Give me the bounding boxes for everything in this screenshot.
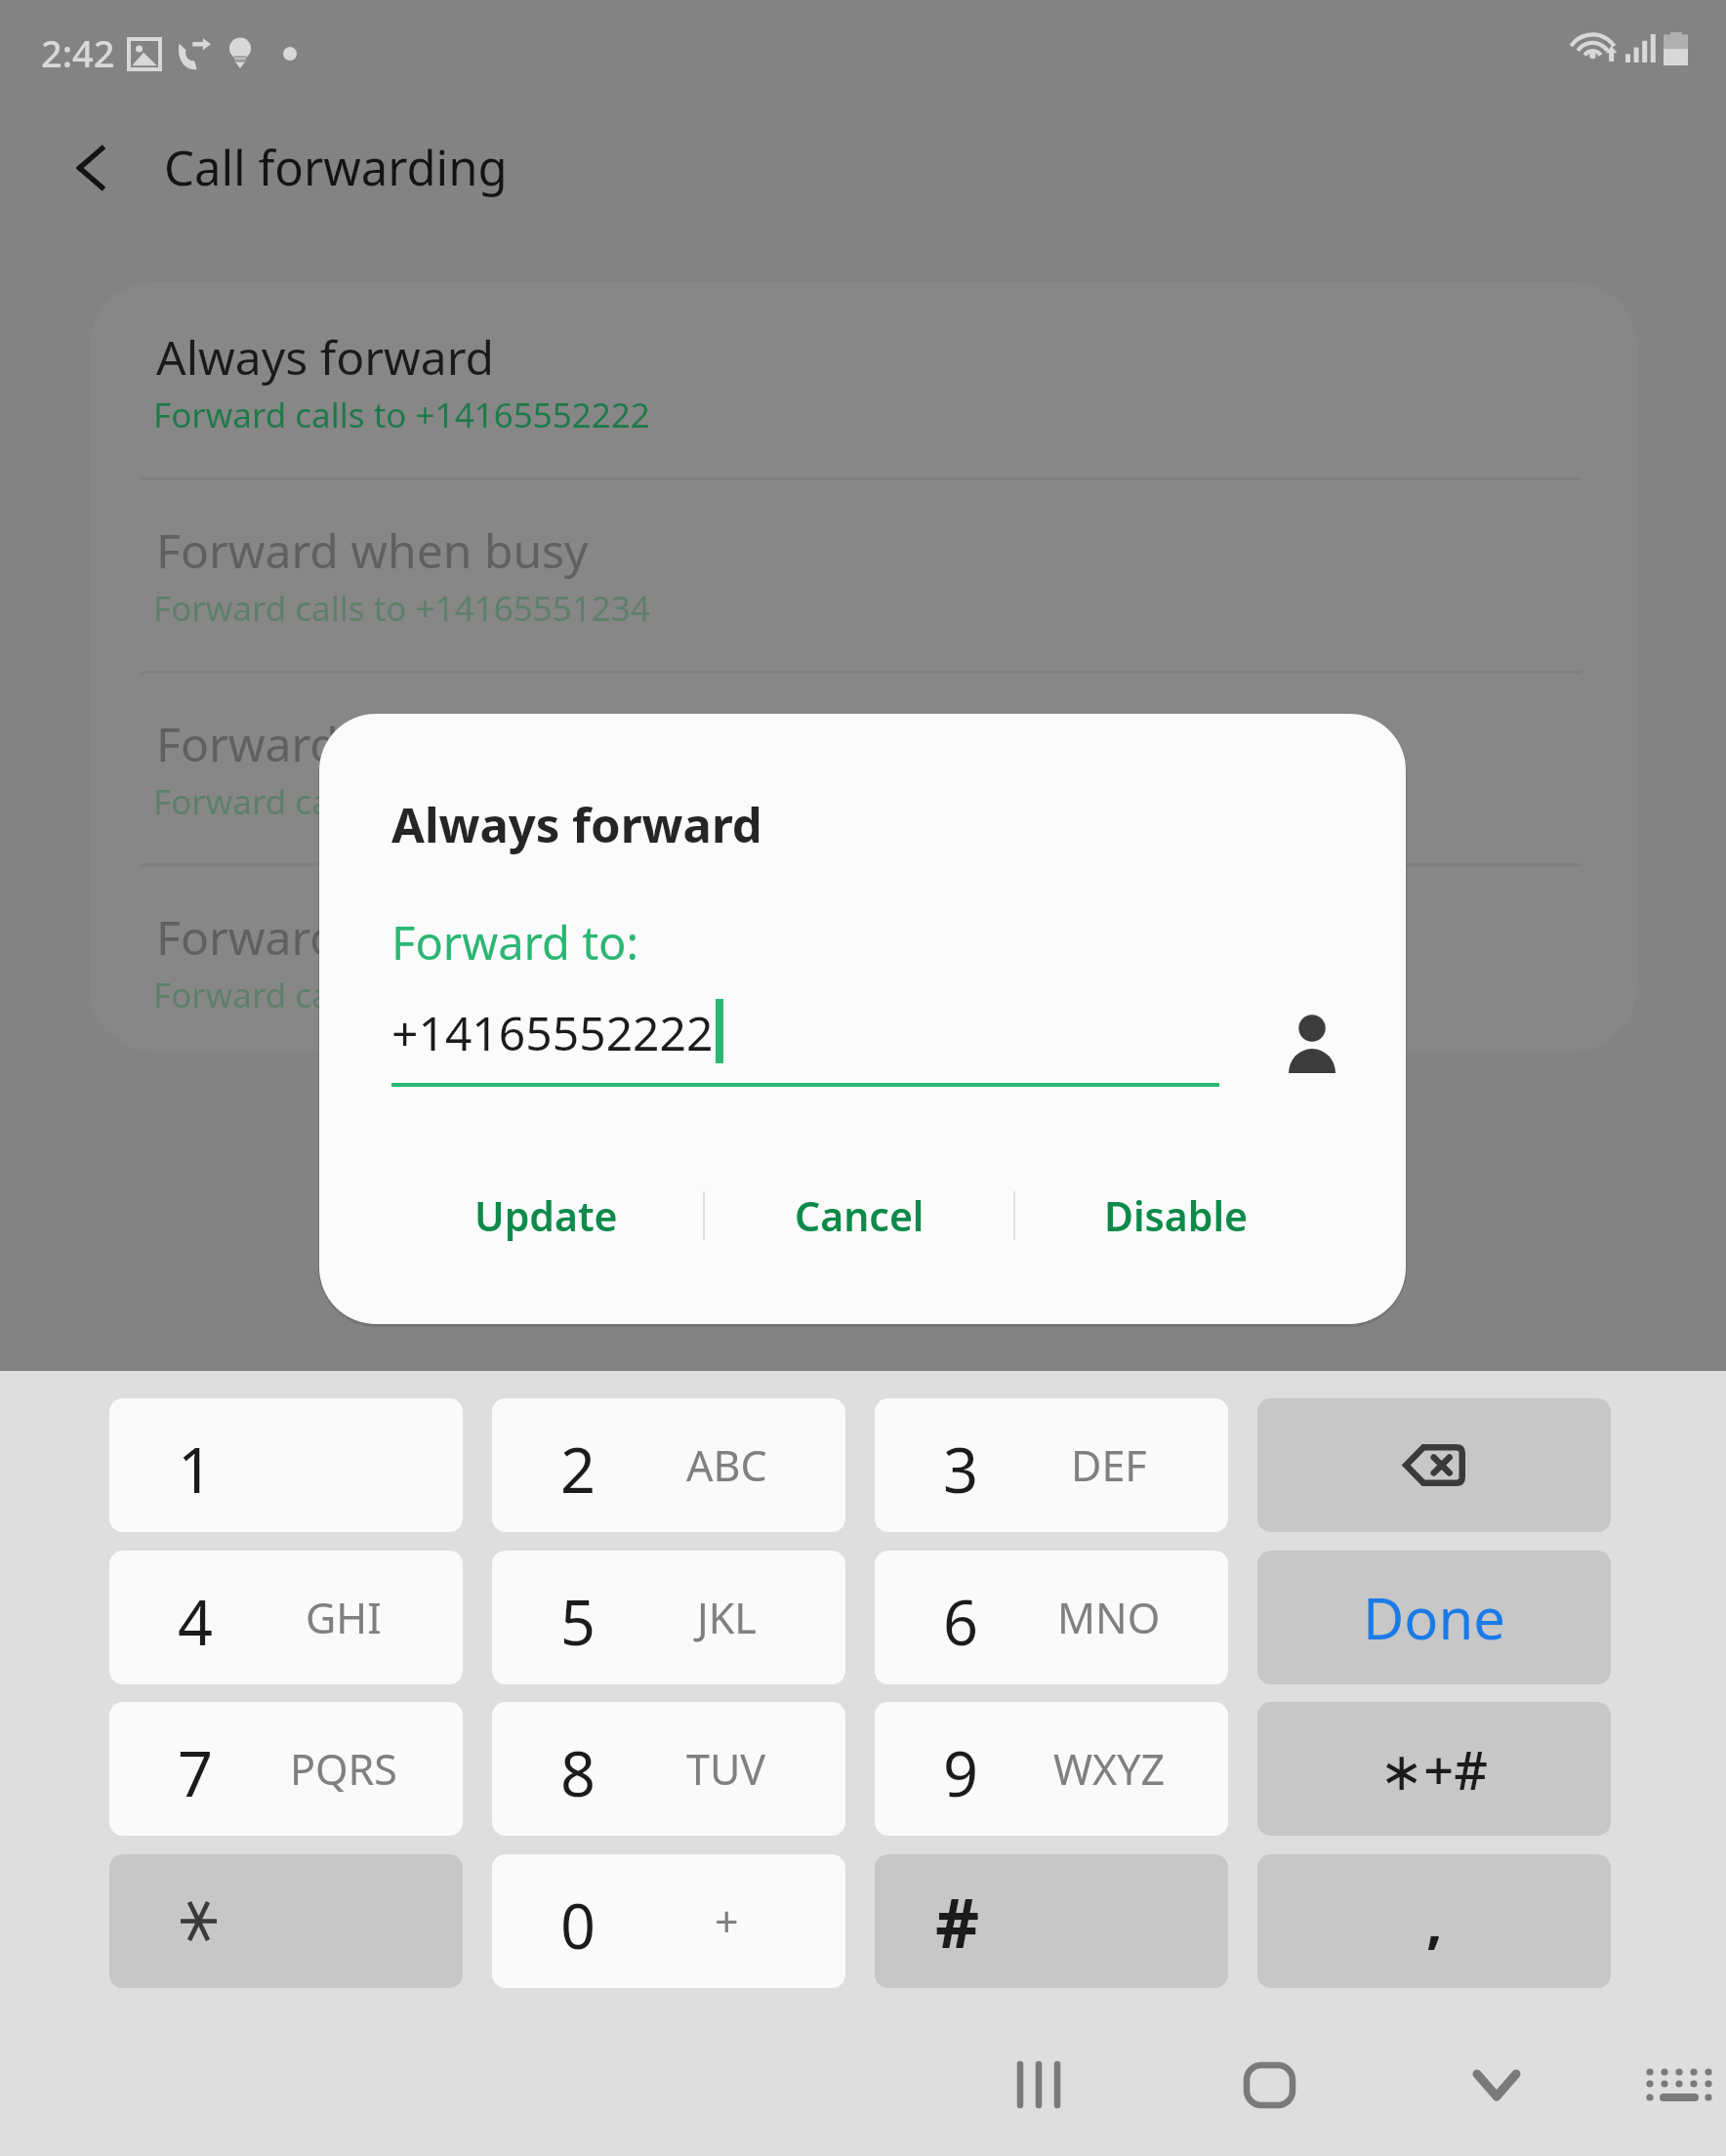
staticText: Forward calls to +14165551234 <box>153 585 650 632</box>
button[interactable]: Back <box>36 113 145 223</box>
staticText: MNO <box>1057 1589 1161 1646</box>
button[interactable]: 3 <box>875 1398 1228 1532</box>
staticText: 9 <box>943 1731 979 1815</box>
button[interactable]: Forward when unreachable <box>90 862 1637 1052</box>
staticText: ∗+# <box>1379 1733 1489 1805</box>
button[interactable]: Update <box>432 1169 659 1263</box>
staticText: +14165552222 <box>391 1001 714 1064</box>
button[interactable]: Forward when unanswered <box>90 669 1637 862</box>
button[interactable]: Star <box>109 1854 463 1988</box>
staticText: Disable <box>1104 1188 1249 1243</box>
staticText: 2 <box>560 1428 596 1512</box>
staticText: Call forwarding <box>164 135 508 200</box>
button[interactable]: Always forward <box>90 282 1637 476</box>
staticText: Always forward <box>156 325 495 389</box>
button[interactable]: 9 <box>875 1702 1228 1836</box>
staticText: DEF <box>1071 1436 1147 1494</box>
button[interactable]: 0 <box>492 1854 845 1988</box>
staticText: Cancel <box>795 1188 925 1243</box>
staticText: Forward calls to +14165552222 <box>153 392 650 438</box>
staticText: TUV <box>686 1740 766 1798</box>
button[interactable]: Home <box>1191 2007 1347 2156</box>
button[interactable]: 6 <box>875 1551 1228 1684</box>
button[interactable]: 4 <box>109 1551 463 1684</box>
button[interactable]: Pick contact <box>1237 966 1374 1102</box>
staticText: 3 <box>943 1428 979 1512</box>
staticText: Forward calls to +14165551234 <box>153 778 650 825</box>
staticText: 7 <box>178 1731 214 1815</box>
staticText: 2:42 <box>41 27 115 78</box>
staticText: 4 <box>178 1580 214 1664</box>
staticText: Update <box>474 1188 618 1243</box>
staticText: Always forward <box>391 792 762 857</box>
staticText: Forward to: <box>391 911 639 974</box>
button[interactable]: 5 <box>492 1551 845 1684</box>
staticText: 1 <box>178 1428 214 1512</box>
staticText: + <box>715 1892 739 1950</box>
button[interactable]: Hide keyboard <box>1418 2007 1575 2156</box>
staticText: Forward when busy <box>156 518 589 582</box>
staticText: GHI <box>306 1589 382 1646</box>
button[interactable]: , <box>1257 1854 1611 1988</box>
button[interactable]: 2 <box>492 1398 845 1532</box>
button[interactable]: # <box>875 1854 1228 1988</box>
staticText: Forward when unreachable <box>156 905 759 969</box>
staticText: PQRS <box>290 1740 397 1798</box>
staticText: # <box>935 1875 980 1968</box>
button[interactable]: Recents <box>961 2007 1117 2156</box>
staticText: 8 <box>560 1731 596 1815</box>
staticText: ABC <box>686 1436 767 1494</box>
staticText: Done <box>1363 1579 1505 1656</box>
staticText: 6 <box>943 1580 979 1664</box>
button[interactable]: 8 <box>492 1702 845 1836</box>
button[interactable]: Backspace <box>1257 1398 1611 1532</box>
staticText: 5 <box>560 1580 596 1664</box>
button[interactable]: Change keyboard <box>1611 2016 1726 2153</box>
staticText: WXYZ <box>1053 1740 1166 1798</box>
staticText: Forward when unanswered <box>156 712 758 775</box>
button[interactable]: 1 <box>109 1398 463 1532</box>
button[interactable]: Done <box>1257 1551 1611 1684</box>
button[interactable]: Cancel <box>746 1169 972 1263</box>
button[interactable]: ∗+# <box>1257 1702 1611 1836</box>
button[interactable]: Forward when busy <box>90 476 1637 669</box>
button[interactable]: Disable <box>1063 1169 1290 1263</box>
staticText: , <box>1426 1883 1443 1960</box>
button[interactable]: 7 <box>109 1702 463 1836</box>
staticText: JKL <box>697 1589 757 1646</box>
staticText: 0 <box>560 1884 596 1968</box>
staticText: Forward calls to +14165551234 <box>153 972 650 1018</box>
